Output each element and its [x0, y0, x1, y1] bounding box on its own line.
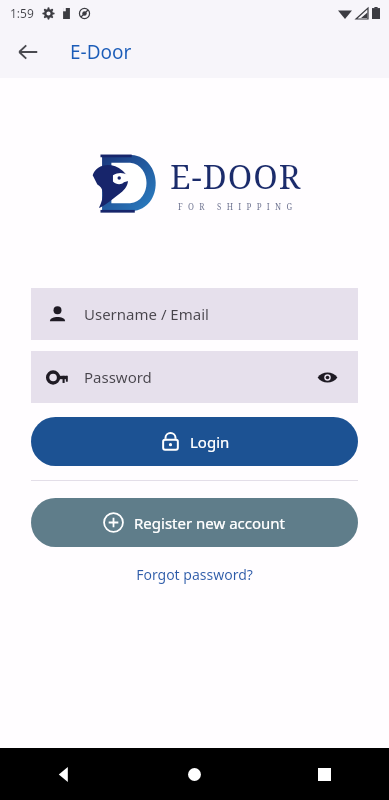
button[interactable]: Back	[0, 748, 129, 800]
button[interactable]: Recent apps	[259, 748, 389, 800]
staticText: E-DOOR	[170, 154, 302, 199]
staticText: E-Door	[70, 39, 132, 65]
button[interactable]: Register new account	[31, 498, 358, 547]
button[interactable]: Show password	[312, 362, 342, 392]
button[interactable]: Username / Email	[31, 288, 358, 340]
staticText: Forgot password?	[136, 565, 253, 584]
button[interactable]: Login	[31, 417, 358, 466]
button[interactable]: Home	[129, 748, 259, 800]
staticText: Register new account	[134, 513, 286, 533]
staticText: Username / Email	[84, 304, 209, 324]
button[interactable]: Forgot password?	[128, 561, 261, 588]
staticText: Login	[190, 432, 230, 452]
button[interactable]: Password	[31, 351, 358, 403]
button[interactable]: Back	[8, 32, 48, 72]
staticText: 1:59	[10, 5, 34, 21]
staticText: Password	[84, 367, 152, 387]
staticText: F O R S H I P P I N G	[178, 201, 294, 212]
